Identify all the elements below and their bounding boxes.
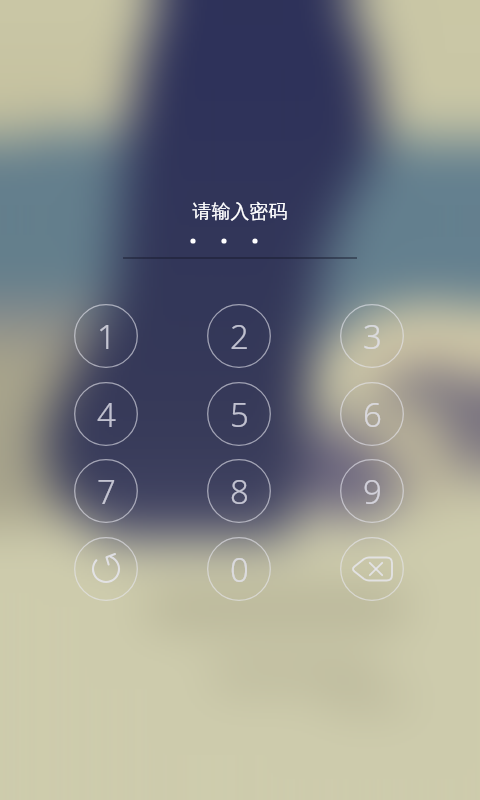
button[interactable]: Reset	[74, 537, 138, 601]
button[interactable]: 8	[207, 459, 271, 523]
button[interactable]: 2	[207, 304, 271, 368]
staticText: 4	[97, 392, 116, 437]
staticText: 0	[230, 547, 249, 592]
staticText: 9	[363, 469, 382, 514]
button[interactable]: 6	[340, 382, 404, 446]
button[interactable]: 5	[207, 382, 271, 446]
staticText: 7	[97, 469, 116, 514]
staticText: 6	[363, 392, 382, 437]
button[interactable]: 3	[340, 304, 404, 368]
staticText: 2	[230, 314, 249, 359]
staticText: 请输入密码	[0, 200, 480, 224]
button[interactable]: Delete	[340, 537, 404, 601]
button[interactable]: 7	[74, 459, 138, 523]
staticText: 3	[363, 314, 382, 359]
button[interactable]: 0	[207, 537, 271, 601]
staticText: 8	[230, 469, 249, 514]
staticText: 1	[97, 314, 116, 359]
button[interactable]: 4	[74, 382, 138, 446]
button[interactable]: 9	[340, 459, 404, 523]
button[interactable]: 1	[74, 304, 138, 368]
staticText: 5	[230, 392, 249, 437]
